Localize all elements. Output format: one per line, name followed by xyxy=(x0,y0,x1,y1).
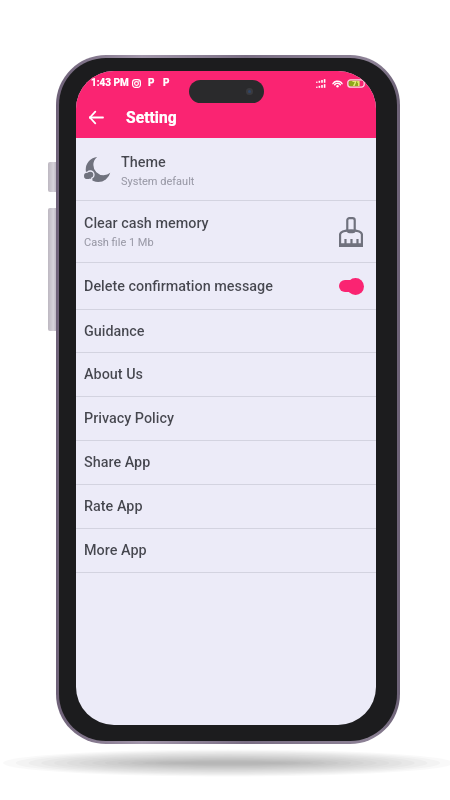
button[interactable]: About Us xyxy=(76,353,376,396)
staticText: Clear cash memory xyxy=(84,215,209,232)
staticText: Privacy Policy xyxy=(84,410,175,427)
button[interactable]: More App xyxy=(76,529,376,572)
button[interactable]: Privacy Policy xyxy=(76,397,376,440)
staticText: Share App xyxy=(84,454,151,471)
staticText: 1:43 PM xyxy=(91,77,129,89)
staticText: Delete confirmation message xyxy=(84,278,273,295)
button[interactable]: Clear cash memory xyxy=(76,201,376,262)
staticText: About Us xyxy=(84,366,143,383)
staticText: Theme xyxy=(121,154,166,171)
staticText: 71 xyxy=(352,80,361,88)
staticText: System default xyxy=(121,175,195,188)
staticText: Cash file 1 Mb xyxy=(84,236,154,249)
button[interactable]: Share App xyxy=(76,441,376,484)
button[interactable]: Rate App xyxy=(76,485,376,528)
staticText: Rate App xyxy=(84,498,143,515)
button[interactable]: Theme xyxy=(76,138,376,200)
button[interactable]: Guidance xyxy=(76,310,376,352)
staticText: P xyxy=(163,77,170,89)
staticText: More App xyxy=(84,542,147,559)
button[interactable]: Back xyxy=(82,103,110,131)
button[interactable]: Delete confirmation message xyxy=(76,263,376,309)
staticText: Guidance xyxy=(84,323,145,340)
staticText: P xyxy=(148,77,155,89)
staticText: Setting xyxy=(126,108,177,126)
